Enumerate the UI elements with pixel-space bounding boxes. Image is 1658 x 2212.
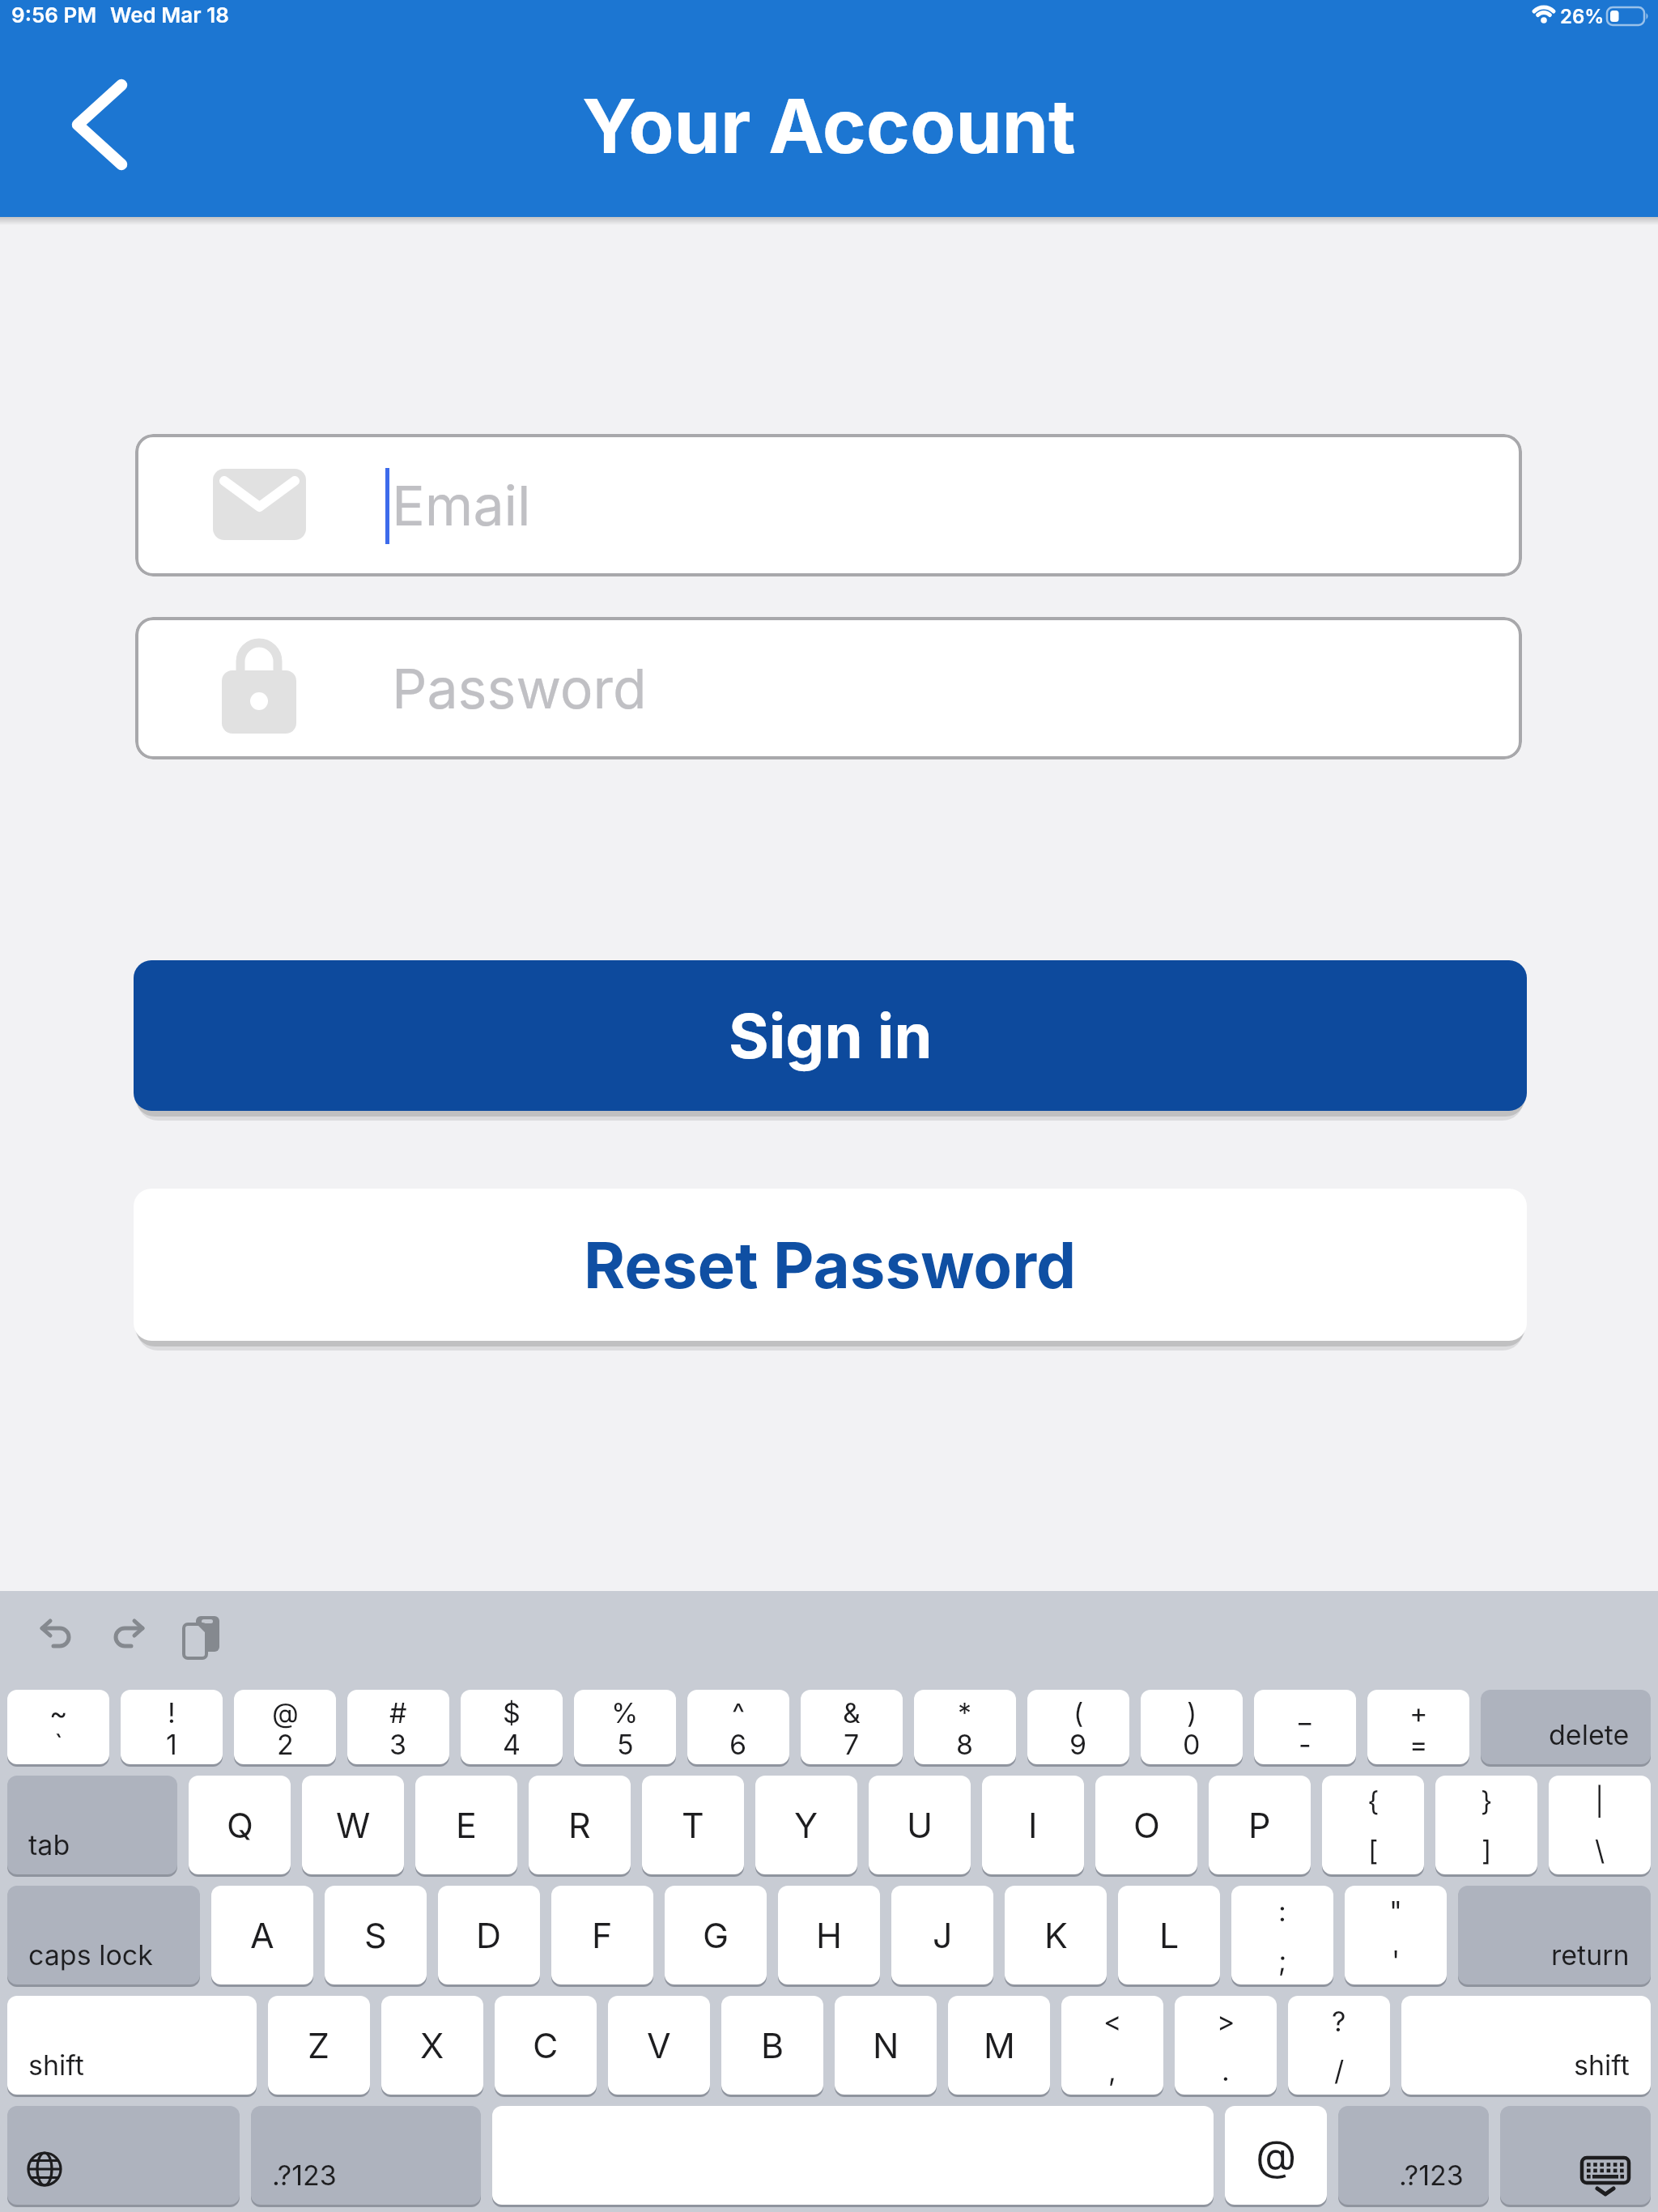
button[interactable]: ~	[7, 1690, 109, 1764]
button[interactable]: J	[891, 1886, 993, 1984]
staticText: +	[1409, 1696, 1428, 1729]
button[interactable]: @	[1225, 2106, 1327, 2205]
staticText: Q	[227, 1804, 253, 1846]
button[interactable]: !	[121, 1690, 223, 1764]
button[interactable]	[492, 2106, 1214, 2205]
button[interactable]: Z	[268, 1996, 370, 2095]
button[interactable]: Q	[189, 1776, 291, 1874]
button[interactable]: #	[347, 1690, 449, 1764]
button[interactable]: shift	[1401, 1996, 1651, 2095]
staticText: Password	[392, 655, 647, 721]
staticText: C	[533, 2024, 559, 2066]
button[interactable]: S	[325, 1886, 427, 1984]
button[interactable]: O	[1095, 1776, 1197, 1874]
staticText: F	[592, 1914, 613, 1956]
staticText: ~	[49, 1696, 68, 1729]
staticText: Your Account	[582, 81, 1076, 171]
staticText: T	[682, 1804, 704, 1846]
staticText: `	[54, 1728, 63, 1761]
button[interactable]: &	[801, 1690, 903, 1764]
button[interactable]	[57, 69, 138, 182]
button[interactable]: N	[835, 1996, 937, 2095]
button[interactable]: shift	[7, 1996, 257, 2095]
button[interactable]: return	[1458, 1886, 1651, 1984]
button[interactable]: "	[1345, 1886, 1447, 1984]
button[interactable]: {	[1322, 1776, 1424, 1874]
button[interactable]: V	[608, 1996, 710, 2095]
button[interactable]: *	[914, 1690, 1016, 1764]
button[interactable]: @	[234, 1690, 336, 1764]
button[interactable]: X	[381, 1996, 483, 2095]
button[interactable]: _	[1254, 1690, 1356, 1764]
button[interactable]: $	[461, 1690, 563, 1764]
button[interactable]: P	[1209, 1776, 1311, 1874]
button[interactable]: E	[415, 1776, 517, 1874]
button[interactable]: F	[551, 1886, 653, 1984]
button[interactable]: M	[948, 1996, 1050, 2095]
button[interactable]: tab	[7, 1776, 177, 1874]
button[interactable]: %	[574, 1690, 676, 1764]
button[interactable]: Y	[755, 1776, 857, 1874]
button[interactable]	[112, 1619, 144, 1649]
button[interactable]: K	[1005, 1886, 1107, 1984]
staticText: A	[250, 1914, 274, 1956]
button[interactable]: :	[1231, 1886, 1333, 1984]
button[interactable]	[1500, 2106, 1651, 2205]
staticText: 5	[617, 1728, 634, 1761]
button[interactable]: D	[438, 1886, 540, 1984]
button[interactable]: A	[211, 1886, 313, 1984]
button[interactable]: Reset Password	[134, 1189, 1527, 1341]
button[interactable]: +	[1367, 1690, 1469, 1764]
button[interactable]: C	[495, 1996, 597, 2095]
button[interactable]: >	[1175, 1996, 1277, 2095]
button[interactable]: .?123	[1338, 2106, 1489, 2205]
button[interactable]: G	[665, 1886, 767, 1984]
button[interactable]: T	[642, 1776, 744, 1874]
button[interactable]: }	[1435, 1776, 1537, 1874]
button[interactable]: H	[778, 1886, 880, 1984]
button[interactable]: Email	[135, 434, 1522, 576]
staticText: @	[1256, 2130, 1297, 2181]
staticText: 0	[1183, 1728, 1201, 1761]
staticText: <	[1103, 2005, 1122, 2038]
button[interactable]: .?123	[251, 2106, 481, 2205]
button[interactable]: R	[529, 1776, 631, 1874]
staticText: R	[568, 1804, 591, 1846]
staticText: .?123	[272, 2159, 337, 2192]
button[interactable]: <	[1061, 1996, 1163, 2095]
staticText: *	[958, 1696, 972, 1729]
staticText: J	[933, 1914, 953, 1956]
staticText: $	[503, 1696, 521, 1729]
button[interactable]: W	[302, 1776, 404, 1874]
staticText: @	[272, 1696, 299, 1729]
button[interactable]: B	[721, 1996, 823, 2095]
staticText: caps lock	[28, 1938, 153, 1972]
button[interactable]: )	[1141, 1690, 1243, 1764]
button[interactable]: ^	[687, 1690, 789, 1764]
staticText: 6	[729, 1728, 747, 1761]
button[interactable]: delete	[1481, 1690, 1651, 1764]
button[interactable]: caps lock	[7, 1886, 200, 1984]
staticText: return	[1551, 1938, 1630, 1972]
staticText: Wed Mar 18	[110, 2, 229, 28]
button[interactable]	[184, 1616, 221, 1658]
button[interactable]: L	[1118, 1886, 1220, 1984]
staticText: N	[873, 2024, 899, 2066]
staticText: |	[1595, 1784, 1605, 1818]
button[interactable]	[7, 2106, 240, 2205]
staticText: B	[761, 2024, 784, 2066]
staticText: 9	[1069, 1728, 1087, 1761]
staticText: shift	[1574, 2048, 1630, 2082]
staticText: }	[1481, 1784, 1493, 1818]
staticText: )	[1187, 1696, 1197, 1729]
button[interactable]: ?	[1288, 1996, 1390, 2095]
button[interactable]: Password	[135, 617, 1522, 759]
staticText: >	[1217, 2005, 1235, 2038]
button[interactable]: U	[869, 1776, 971, 1874]
staticText: 3	[389, 1728, 407, 1761]
button[interactable]: Sign in	[134, 960, 1527, 1111]
button[interactable]	[40, 1619, 73, 1649]
button[interactable]: (	[1027, 1690, 1129, 1764]
button[interactable]: I	[982, 1776, 1084, 1874]
button[interactable]: |	[1549, 1776, 1651, 1874]
